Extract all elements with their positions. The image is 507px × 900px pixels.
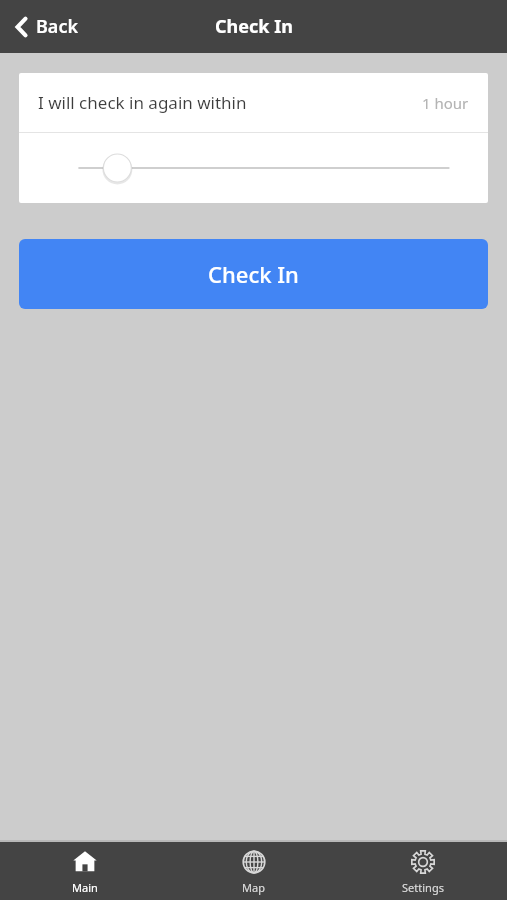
button[interactable]: Back [10, 8, 83, 45]
staticText: 1 hour [422, 93, 469, 113]
staticText: Map [242, 880, 265, 895]
button[interactable]: I will check in again within [19, 73, 488, 132]
staticText: Settings [402, 880, 444, 895]
button[interactable]: Settings [338, 842, 507, 900]
staticText: Back [36, 14, 79, 39]
button[interactable]: Main [0, 842, 169, 900]
button[interactable]: Check In [19, 239, 488, 309]
staticText: Check In [215, 14, 293, 39]
button[interactable]: Check in interval slider [19, 133, 488, 203]
staticText: Main [72, 880, 98, 895]
staticText: Check In [208, 259, 299, 289]
button[interactable]: Map [169, 842, 338, 900]
staticText: I will check in again within [38, 91, 247, 114]
